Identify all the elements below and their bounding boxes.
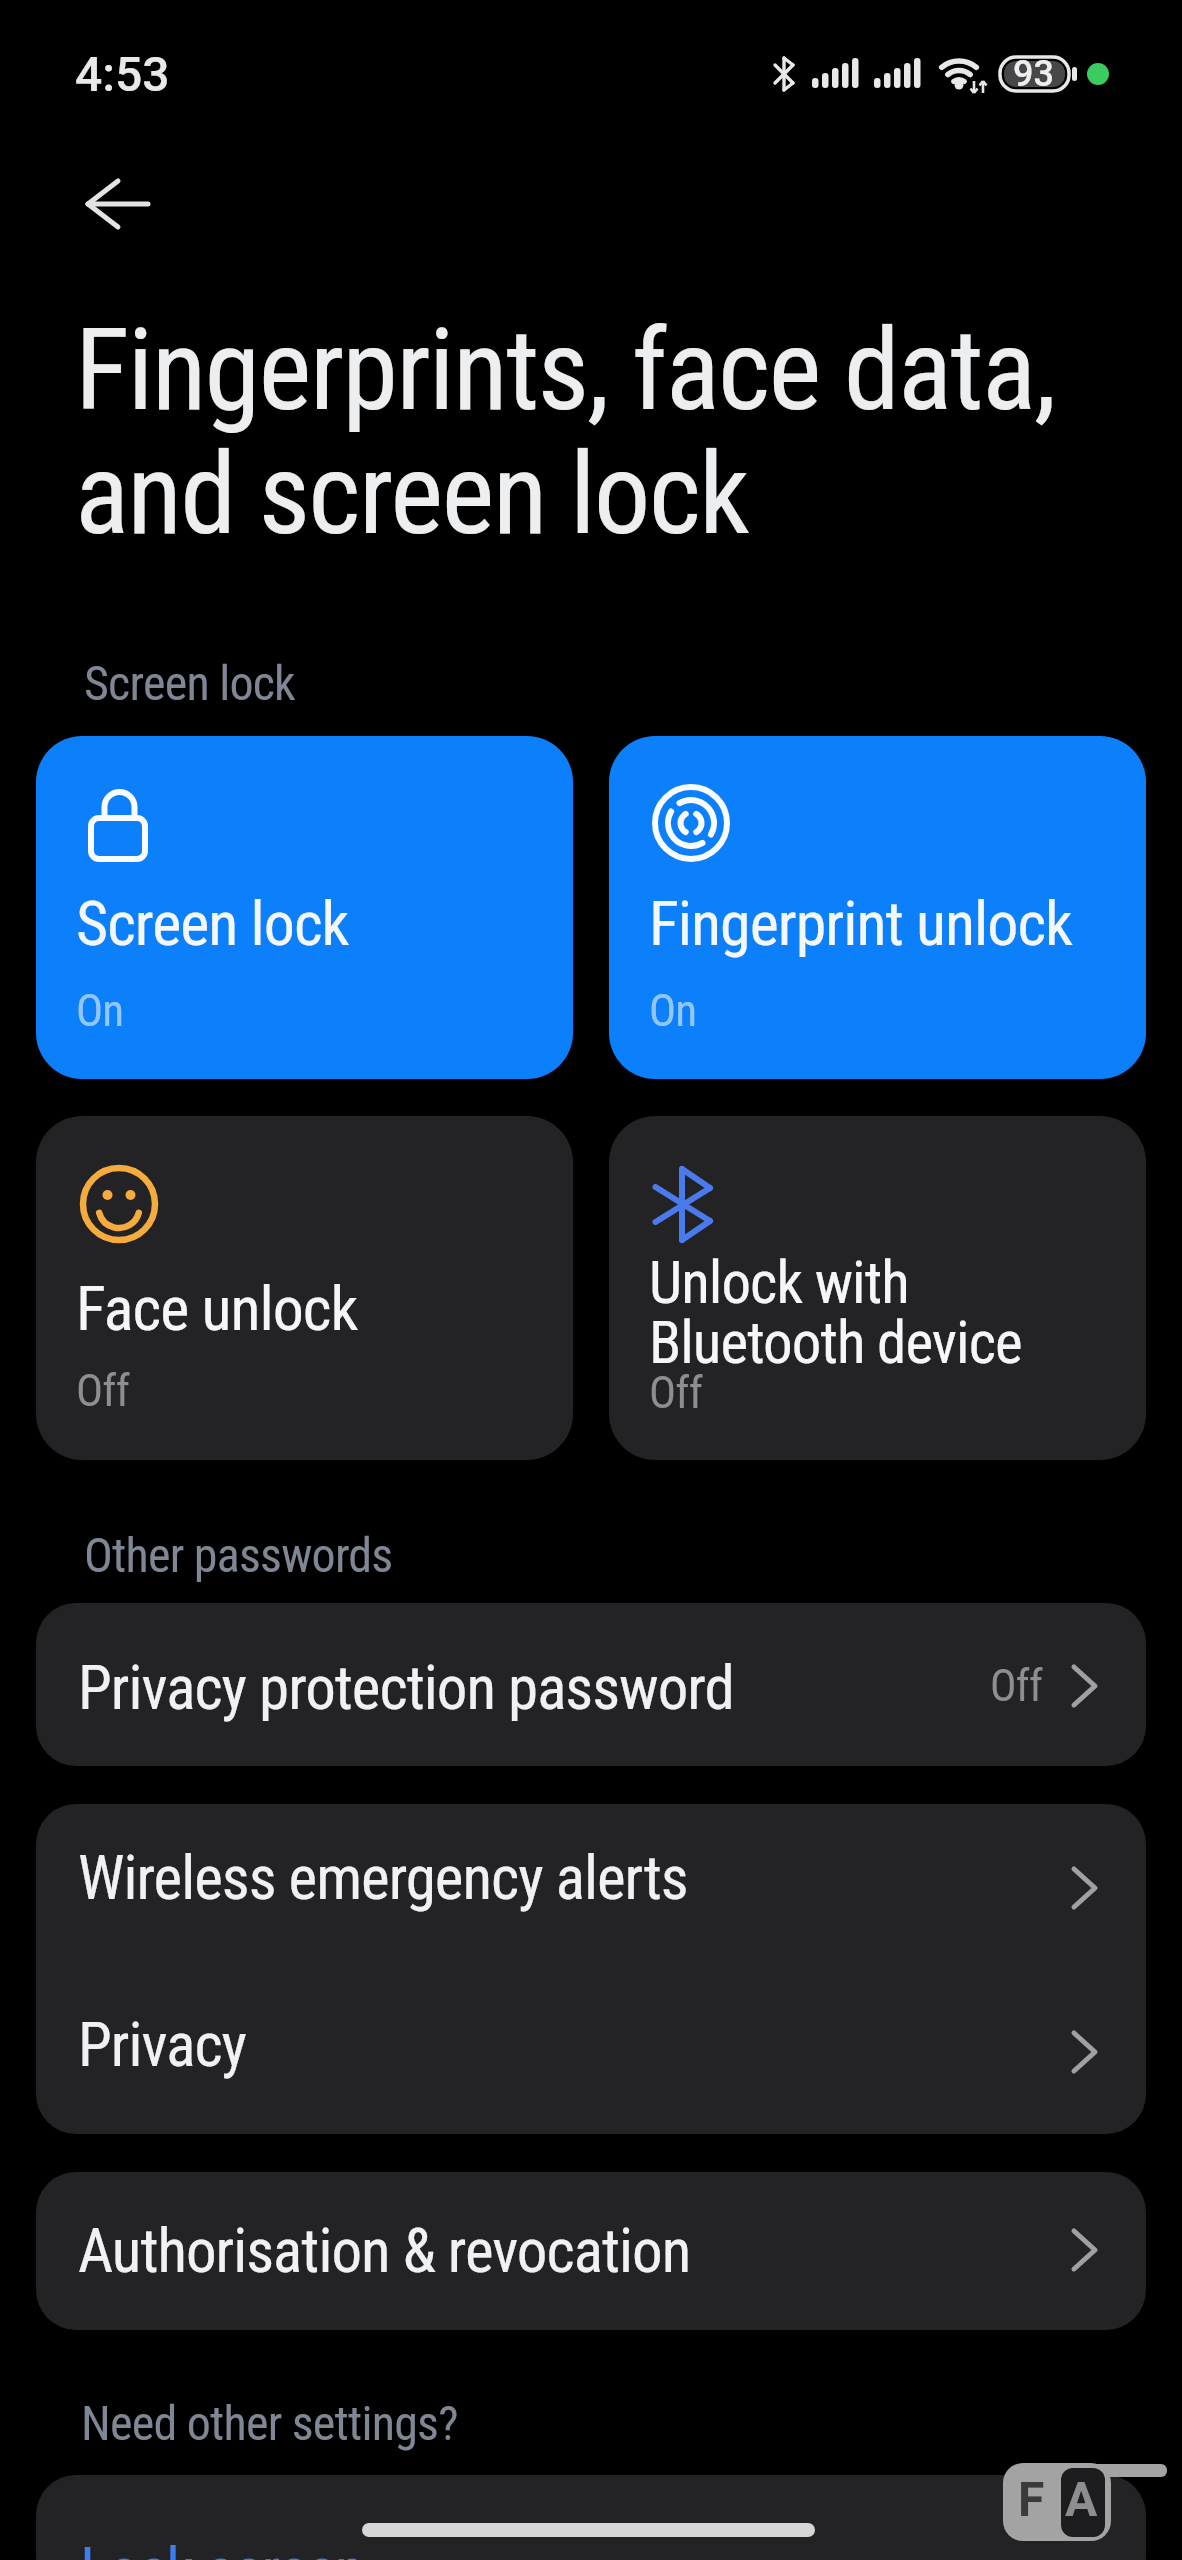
button[interactable]: Privacy	[36, 1969, 1146, 2134]
staticText: Unlock with	[649, 1248, 909, 1317]
staticText: Privacy protection password	[78, 1652, 734, 1723]
staticText: Wireless emergency alerts	[78, 1842, 688, 1913]
staticText: F	[1018, 2471, 1045, 2527]
button[interactable]	[76, 166, 160, 242]
staticText: On	[76, 984, 124, 1037]
staticText: 4:53	[75, 46, 170, 102]
staticText: Other passwords	[84, 1527, 393, 1583]
staticText: Fingerprints, face data,	[75, 304, 1055, 436]
staticText: Screen lock	[84, 655, 295, 711]
button[interactable]: F	[1003, 2463, 1111, 2541]
staticText: A	[1065, 2471, 1098, 2527]
button[interactable]: Unlock with	[609, 1116, 1146, 1460]
staticText: Face unlock	[76, 1272, 358, 1345]
staticText: Lock screen	[80, 2533, 364, 2560]
staticText: Fingerprint unlock	[649, 887, 1072, 960]
staticText: 93	[1013, 53, 1054, 95]
staticText: Off	[990, 1660, 1043, 1712]
button[interactable]: Wireless emergency alerts	[36, 1804, 1146, 1969]
button[interactable]: Screen lock	[36, 736, 573, 1079]
staticText: Need other settings?	[81, 2395, 458, 2451]
button[interactable]: Authorisation & revocation	[36, 2172, 1146, 2330]
staticText: Privacy	[78, 2009, 247, 2080]
staticText: On	[649, 984, 697, 1037]
button[interactable]: Fingerprint unlock	[609, 736, 1146, 1079]
staticText: Bluetooth device	[649, 1308, 1022, 1377]
staticText: Authorisation & revocation	[78, 2215, 691, 2286]
staticText: Off	[76, 1364, 130, 1417]
staticText: Screen lock	[76, 887, 349, 960]
button[interactable]: Lock screen	[36, 2475, 1146, 2560]
button[interactable]: Privacy protection password	[36, 1603, 1146, 1766]
staticText: and screen lock	[75, 428, 749, 560]
button[interactable]: Face unlock	[36, 1116, 573, 1460]
staticText: Off	[649, 1366, 703, 1419]
